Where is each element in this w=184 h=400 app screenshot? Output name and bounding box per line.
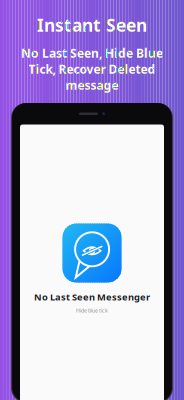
staticText: Tick, Recover Deleted — [28, 61, 155, 77]
staticText: No Last Seen, Hide Blue — [21, 45, 163, 61]
staticText: No Last Seen Messenger — [34, 291, 150, 303]
staticText: Hide blue tick — [76, 307, 108, 314]
staticText: message — [65, 77, 118, 93]
staticText: Instant Seen — [37, 13, 147, 36]
